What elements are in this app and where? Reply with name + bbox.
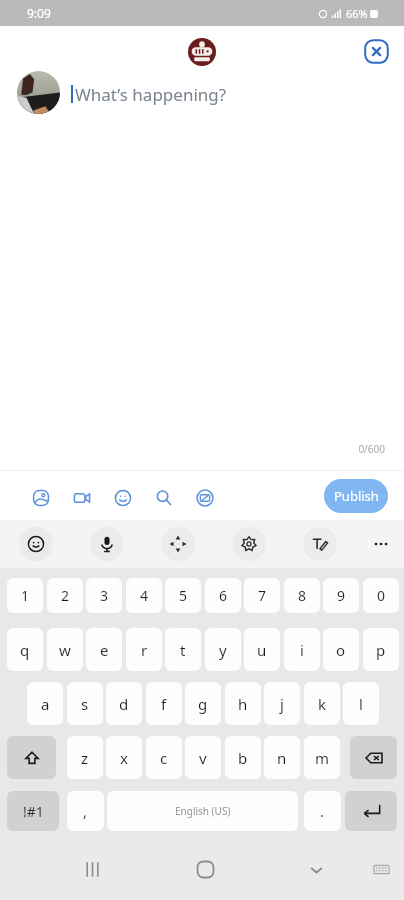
- button[interactable]: Close: [364, 39, 389, 64]
- button[interactable]: Symbols: [7, 791, 59, 831]
- staticText: r: [141, 640, 148, 660]
- button[interactable]: Recents: [72, 849, 112, 889]
- button[interactable]: b: [225, 736, 261, 779]
- staticText: s: [81, 694, 89, 714]
- staticText: Publish: [334, 487, 379, 505]
- staticText: m: [315, 748, 330, 768]
- button[interactable]: q: [7, 628, 43, 671]
- button[interactable]: Emoji: [114, 489, 132, 507]
- staticText: o: [336, 640, 346, 660]
- staticText: b: [238, 748, 248, 768]
- staticText: 4: [140, 586, 149, 605]
- staticText: 1: [21, 586, 30, 605]
- staticText: 0/600: [0, 442, 385, 456]
- button[interactable]: v: [185, 736, 221, 779]
- button[interactable]: n: [264, 736, 300, 779]
- staticText: j: [280, 694, 284, 714]
- button[interactable]: Move cursor: [161, 527, 195, 561]
- staticText: q: [20, 640, 30, 660]
- staticText: 0: [377, 586, 386, 605]
- staticText: i: [300, 640, 304, 660]
- staticText: 7: [258, 586, 267, 605]
- staticText: .: [320, 801, 325, 821]
- button[interactable]: x: [106, 736, 142, 779]
- staticText: p: [376, 640, 386, 660]
- staticText: x: [120, 748, 128, 768]
- button[interactable]: Publish: [324, 479, 388, 513]
- button[interactable]: 9: [323, 578, 359, 613]
- button[interactable]: 7: [244, 578, 280, 613]
- button[interactable]: f: [146, 682, 182, 725]
- button[interactable]: Home: [185, 849, 225, 889]
- staticText: 8: [298, 586, 307, 605]
- button[interactable]: 8: [284, 578, 320, 613]
- staticText: 5: [179, 586, 188, 605]
- button[interactable]: a: [27, 682, 63, 725]
- button[interactable]: i: [284, 628, 320, 671]
- staticText: What’s happening?: [75, 83, 227, 106]
- button[interactable]: w: [47, 628, 83, 671]
- staticText: t: [180, 640, 186, 660]
- staticText: c: [160, 748, 168, 768]
- button[interactable]: 3: [86, 578, 122, 613]
- button[interactable]: Shift: [7, 736, 56, 779]
- button[interactable]: r: [126, 628, 162, 671]
- button[interactable]: More: [364, 527, 398, 561]
- button[interactable]: 5: [165, 578, 201, 613]
- button[interactable]: Space: [107, 791, 298, 831]
- staticText: y: [219, 640, 227, 660]
- button[interactable]: 2: [47, 578, 83, 613]
- button[interactable]: p: [363, 628, 399, 671]
- staticText: h: [238, 694, 248, 714]
- button[interactable]: j: [264, 682, 300, 725]
- button[interactable]: Search: [155, 489, 173, 507]
- staticText: z: [81, 748, 89, 768]
- button[interactable]: o: [323, 628, 359, 671]
- staticText: f: [161, 694, 167, 714]
- button[interactable]: u: [244, 628, 280, 671]
- staticText: l: [359, 694, 363, 714]
- button[interactable]: Voice input: [90, 527, 124, 561]
- button[interactable]: Enter: [345, 791, 397, 831]
- button[interactable]: k: [304, 682, 340, 725]
- button[interactable]: e: [86, 628, 122, 671]
- button[interactable]: s: [67, 682, 103, 725]
- button[interactable]: 0: [363, 578, 399, 613]
- staticText: 2: [61, 586, 70, 605]
- staticText: 6: [219, 586, 228, 605]
- button[interactable]: .: [304, 791, 341, 831]
- button[interactable]: Switch keyboard: [361, 849, 401, 889]
- button[interactable]: t: [165, 628, 201, 671]
- staticText: w: [59, 640, 71, 660]
- button[interactable]: Emoji: [19, 527, 53, 561]
- button[interactable]: h: [225, 682, 261, 725]
- staticText: ,: [83, 801, 88, 821]
- button[interactable]: Handwriting: [303, 527, 337, 561]
- staticText: 9: [337, 586, 346, 605]
- button[interactable]: 1: [7, 578, 43, 613]
- button[interactable]: 4: [126, 578, 162, 613]
- button[interactable]: c: [146, 736, 182, 779]
- button[interactable]: g: [185, 682, 221, 725]
- staticText: n: [277, 748, 287, 768]
- button[interactable]: z: [67, 736, 103, 779]
- button[interactable]: l: [343, 682, 379, 725]
- button[interactable]: Backspace: [350, 736, 397, 779]
- button[interactable]: ,: [67, 791, 104, 831]
- button[interactable]: y: [205, 628, 241, 671]
- staticText: 9:09: [27, 5, 51, 21]
- button[interactable]: Video: [73, 489, 91, 507]
- button[interactable]: d: [106, 682, 142, 725]
- staticText: 3: [100, 586, 109, 605]
- button[interactable]: 6: [205, 578, 241, 613]
- button[interactable]: Hide keyboard: [296, 849, 336, 889]
- staticText: k: [318, 694, 327, 714]
- staticText: !#1: [23, 802, 44, 821]
- staticText: d: [119, 694, 129, 714]
- button[interactable]: m: [304, 736, 340, 779]
- button[interactable]: Photo: [32, 489, 50, 507]
- button[interactable]: Keyboard settings: [232, 527, 266, 561]
- staticText: 66%: [346, 6, 368, 21]
- staticText: u: [257, 640, 267, 660]
- button[interactable]: GIF: [196, 489, 214, 507]
